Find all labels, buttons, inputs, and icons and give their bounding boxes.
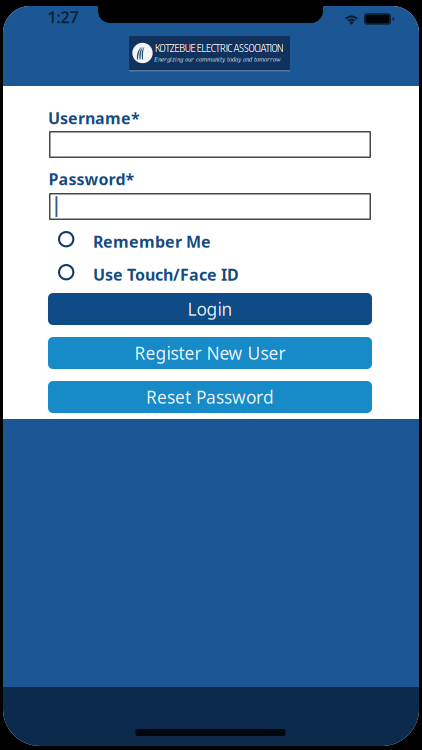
staticText: Remember Me xyxy=(93,231,211,252)
staticText: Energizing our community today and tomor… xyxy=(154,56,281,63)
staticText: Username* xyxy=(48,107,140,129)
button[interactable]: Username xyxy=(49,131,371,158)
staticText: Reset Password xyxy=(146,385,274,408)
button[interactable]: Reset Password xyxy=(48,381,372,413)
staticText: Use Touch/Face ID xyxy=(93,264,239,285)
staticText: 1:27 xyxy=(47,6,78,28)
button[interactable]: Use Touch/Face ID xyxy=(54,260,250,284)
staticText: Password* xyxy=(48,168,134,190)
button[interactable]: Remember Me xyxy=(54,227,250,251)
staticText: Register New User xyxy=(134,341,285,364)
staticText: KOTZEBUE ELECTRIC ASSOCIATION xyxy=(155,42,283,54)
button[interactable]: Password xyxy=(49,193,371,220)
button[interactable]: Login xyxy=(48,293,372,325)
staticText: Login xyxy=(187,297,232,320)
button[interactable]: Register New User xyxy=(48,337,372,369)
